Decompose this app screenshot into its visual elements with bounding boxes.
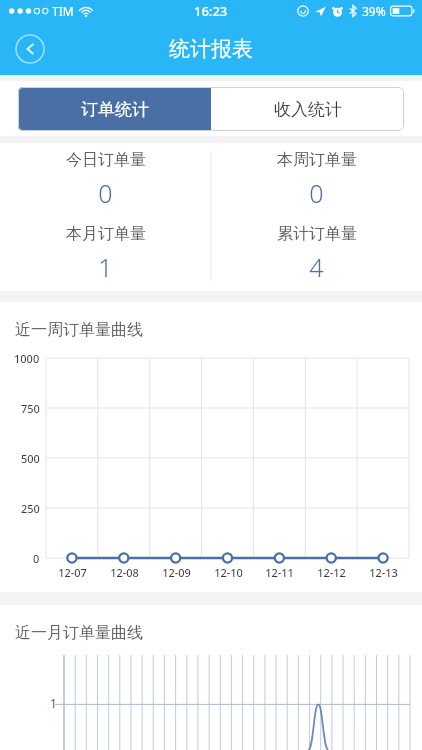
- staticText: 近一月订单量曲线: [15, 623, 143, 643]
- staticText: 12-11: [265, 565, 294, 580]
- staticText: 今日订单量: [66, 150, 146, 170]
- button[interactable]: 今日订单量: [0, 143, 211, 217]
- staticText: TIM: [52, 3, 74, 19]
- staticText: 12-13: [369, 565, 398, 580]
- staticText: 12-07: [58, 565, 87, 580]
- staticText: 500: [21, 451, 40, 466]
- button[interactable]: 本月订单量: [0, 217, 211, 291]
- staticText: 订单统计: [81, 99, 149, 120]
- staticText: 0: [309, 176, 324, 210]
- staticText: 0: [98, 176, 113, 210]
- button[interactable]: 本周订单量: [211, 143, 422, 217]
- staticText: 750: [21, 401, 40, 416]
- staticText: 1: [50, 695, 57, 711]
- staticText: 1000: [14, 351, 40, 366]
- staticText: 39%: [362, 3, 386, 19]
- staticText: 4: [309, 250, 324, 284]
- staticText: 收入统计: [274, 99, 342, 120]
- staticText: 16:23: [194, 2, 228, 20]
- staticText: 统计报表: [169, 36, 253, 62]
- staticText: 本月订单量: [66, 224, 146, 244]
- staticText: 250: [21, 501, 40, 516]
- button[interactable]: 累计订单量: [211, 217, 422, 291]
- button[interactable]: 收入统计: [211, 87, 404, 131]
- staticText: 12-08: [110, 565, 139, 580]
- button[interactable]: 订单统计: [18, 87, 211, 131]
- staticText: 1: [98, 250, 113, 284]
- button[interactable]: Back: [12, 31, 48, 67]
- staticText: 12-12: [317, 565, 346, 580]
- staticText: 累计订单量: [277, 224, 357, 244]
- staticText: 0: [33, 551, 40, 566]
- staticText: 12-10: [214, 565, 243, 580]
- staticText: 本周订单量: [277, 150, 357, 170]
- staticText: 近一周订单量曲线: [15, 320, 143, 340]
- staticText: 12-09: [162, 565, 191, 580]
